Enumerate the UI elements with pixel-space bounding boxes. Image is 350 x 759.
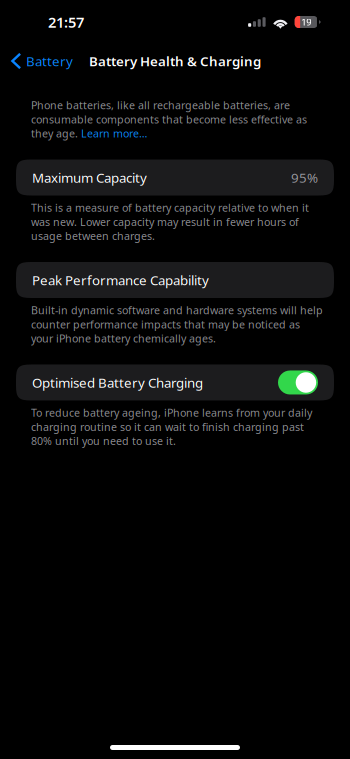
button[interactable]: Battery [0, 47, 73, 75]
staticText: Built-in dynamic software and hardware s… [31, 303, 323, 345]
staticText: Battery [26, 52, 73, 70]
staticText: To reduce battery ageing, iPhone learns … [31, 405, 312, 448]
staticText: Battery Health & Charging [89, 52, 261, 70]
staticText: Phone batteries, like all rechargeable b… [31, 98, 307, 140]
staticText: Peak Performance Capability [32, 271, 209, 289]
button[interactable]: Optimised Battery Charging [0, 364, 350, 400]
staticText: Maximum Capacity [32, 169, 147, 186]
staticText: Optimised Battery Charging [32, 374, 203, 391]
staticText: 19 [301, 16, 311, 28]
staticText: 21:57 [48, 12, 84, 32]
staticText: 95% [291, 169, 318, 186]
button[interactable]: Maximum Capacity [0, 159, 350, 195]
button[interactable]: Peak Performance Capability [0, 262, 350, 298]
staticText: This is a measure of battery capacity re… [31, 200, 309, 243]
